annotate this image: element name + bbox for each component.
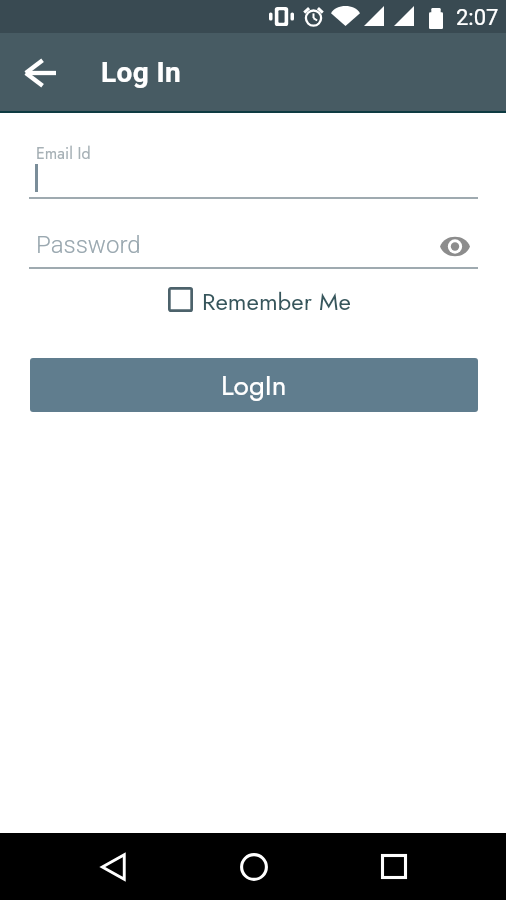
button[interactable]: Home	[214, 833, 294, 900]
button[interactable]: Remember Me	[168, 284, 351, 319]
staticText: Remember Me	[202, 284, 351, 319]
staticText: Email Id	[36, 142, 91, 165]
button[interactable]: Back	[8, 45, 72, 101]
button[interactable]: Back	[73, 833, 153, 900]
staticText: Log In	[101, 56, 182, 89]
staticText: Password	[36, 231, 141, 259]
staticText: LogIn	[221, 365, 287, 405]
button[interactable]: Recents	[354, 833, 434, 900]
button[interactable]: LogIn	[30, 358, 478, 412]
staticText: 2:07	[456, 5, 499, 31]
button[interactable]: Show password	[437, 228, 473, 264]
